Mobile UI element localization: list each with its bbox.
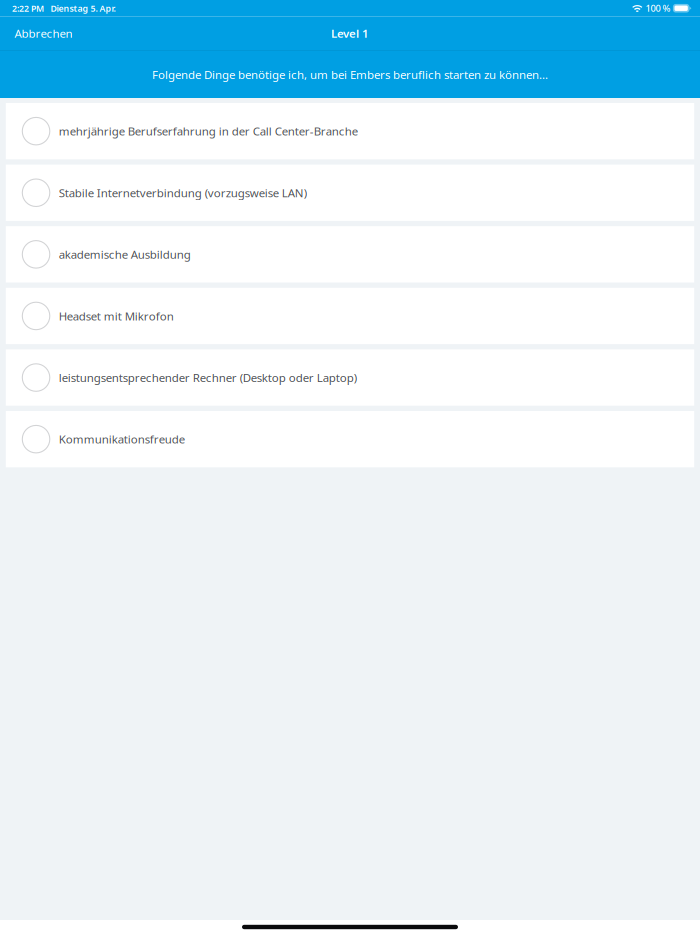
button[interactable]: Stabile Internetverbindung (vorzugsweise…: [6, 165, 694, 221]
button[interactable]: leistungsentsprechender Rechner (Desktop…: [6, 349, 694, 406]
staticText: Kommunikationsfreude: [59, 431, 185, 447]
staticText: 100 %: [645, 2, 670, 14]
button[interactable]: Abbrechen: [0, 16, 87, 50]
staticText: Dienstag 5. Apr.: [50, 2, 115, 14]
button[interactable]: mehrjährige Berufserfahrung in der Call …: [6, 103, 694, 159]
staticText: mehrjährige Berufserfahrung in der Call …: [59, 123, 358, 139]
button[interactable]: Level 1: [319, 16, 381, 50]
staticText: Stabile Internetverbindung (vorzugsweise…: [59, 185, 307, 200]
staticText: Headset mit Mikrofon: [59, 308, 174, 323]
button[interactable]: Kommunikationsfreude: [6, 411, 694, 467]
staticText: Folgende Dinge benötige ich, um bei Embe…: [152, 67, 548, 82]
staticText: Abbrechen: [14, 26, 72, 41]
button[interactable]: Headset mit Mikrofon: [6, 288, 694, 344]
staticText: 2:22 PM: [12, 2, 44, 14]
staticText: akademische Ausbildung: [59, 247, 191, 262]
button[interactable]: akademische Ausbildung: [6, 226, 694, 282]
staticText: leistungsentsprechender Rechner (Desktop…: [59, 370, 357, 385]
staticText: Level 1: [331, 26, 369, 41]
